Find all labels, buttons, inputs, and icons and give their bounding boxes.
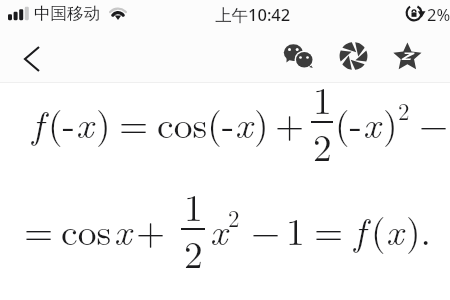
staticText: 1 (184, 179, 203, 232)
staticText: − (251, 203, 281, 256)
staticText: ( (371, 203, 386, 256)
staticText: = (314, 203, 344, 256)
staticText: x (210, 203, 228, 256)
staticText: ) (96, 96, 111, 149)
staticText: = (24, 203, 54, 256)
staticText: x (363, 96, 381, 149)
staticText: x (386, 203, 404, 256)
staticText: x (114, 203, 132, 256)
button[interactable]: Back (6, 34, 48, 76)
button[interactable]: Share to QZone (387, 38, 423, 74)
staticText: x (235, 96, 253, 149)
staticText: 2% (427, 3, 450, 25)
staticText: x (76, 96, 94, 149)
button[interactable]: Camera (335, 37, 369, 71)
staticText: (- (335, 96, 363, 149)
staticText: 中国移动 (34, 3, 100, 24)
staticText: + (136, 203, 166, 256)
staticText: 2 (313, 119, 332, 172)
staticText: 2 (184, 226, 203, 279)
staticText: cos (61, 203, 112, 256)
staticText: (- (48, 96, 76, 149)
staticText: ) (383, 96, 398, 149)
staticText: 1 (286, 203, 305, 256)
staticText: + (275, 96, 305, 149)
staticText: = (119, 96, 149, 149)
staticText: f (354, 203, 366, 256)
staticText: 2 (228, 201, 240, 234)
staticText: ) (254, 96, 269, 149)
staticText: cos(- (157, 96, 235, 149)
staticText: ). (406, 203, 432, 256)
staticText: 上午10:42 (215, 3, 291, 26)
button[interactable]: Share to WeChat (282, 36, 316, 70)
staticText: 1 (313, 72, 332, 125)
staticText: f (32, 96, 44, 149)
staticText: 2 (398, 94, 410, 127)
staticText: − (419, 96, 449, 149)
